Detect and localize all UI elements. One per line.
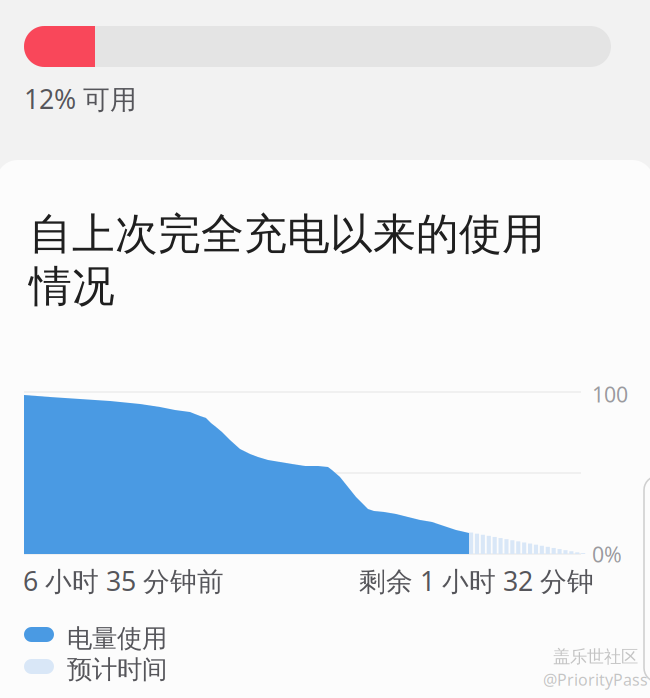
staticText: 100	[592, 380, 628, 408]
staticText: 剩余 1 小时 32 分钟	[359, 563, 594, 598]
staticText: 电量使用	[67, 623, 167, 654]
staticText: 0%	[592, 540, 622, 568]
button[interactable]: 自上次完全充电以来的使用情况	[0, 160, 650, 698]
staticText: 自上次完全充电以来的使用情况	[29, 208, 545, 313]
staticText: @PriorityPass	[543, 669, 648, 690]
staticText: 6 小时 35 分钟前	[23, 563, 224, 598]
button[interactable]: 12% 可用	[24, 26, 626, 124]
staticText: 12% 可用	[24, 81, 137, 116]
staticText: 预计时间	[67, 654, 167, 685]
staticText: 盖乐世社区	[553, 646, 638, 667]
button[interactable]: More battery details	[644, 476, 650, 682]
